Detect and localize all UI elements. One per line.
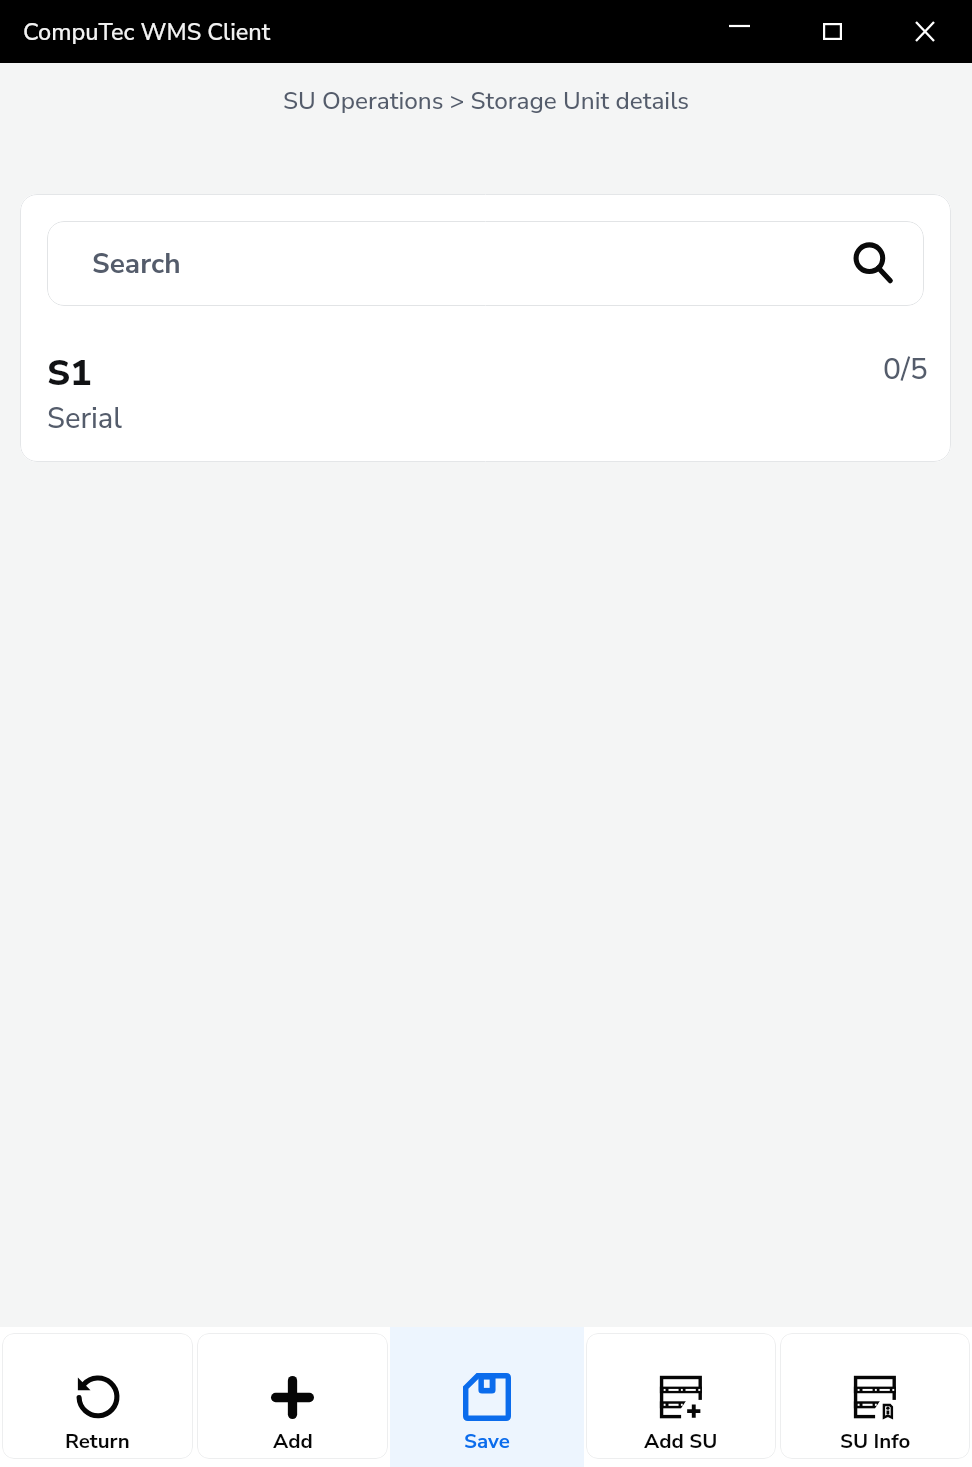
staticText: Serial xyxy=(47,399,123,439)
staticText: S1 xyxy=(47,349,92,398)
button[interactable]: Add xyxy=(197,1333,388,1459)
staticText: Return xyxy=(65,1427,130,1455)
staticText: Add SU xyxy=(644,1427,718,1455)
button[interactable]: Minimize xyxy=(693,0,786,63)
staticText: 0/5 xyxy=(883,349,928,390)
button[interactable]: Add SU xyxy=(586,1333,776,1459)
button[interactable]: S1 xyxy=(20,328,951,444)
button[interactable]: Maximize xyxy=(786,0,878,63)
staticText: CompuTec WMS Client xyxy=(23,16,271,48)
button[interactable]: Search xyxy=(47,221,924,306)
button[interactable]: Close xyxy=(878,0,972,63)
staticText: Add xyxy=(273,1427,313,1455)
other: Search xyxy=(852,241,894,283)
staticText: SU Info xyxy=(840,1427,911,1455)
staticText: Search xyxy=(92,245,181,283)
staticText: SU Operations > Storage Unit details xyxy=(0,84,972,117)
button[interactable]: Save xyxy=(390,1327,584,1467)
button[interactable]: Return xyxy=(2,1333,193,1459)
button[interactable]: SU Info xyxy=(780,1333,970,1459)
staticText: Save xyxy=(464,1427,510,1455)
